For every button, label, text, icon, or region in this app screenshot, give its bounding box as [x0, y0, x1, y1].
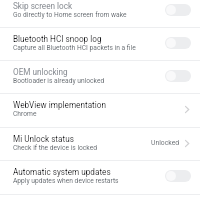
- staticText: Chrome: [13, 110, 37, 118]
- button[interactable]: Bluetooth HCI snoop log: [0, 28, 200, 60]
- button[interactable]: Skip screen lock: [0, 0, 200, 22]
- button[interactable]: Mi Unlock status: [0, 128, 200, 160]
- staticText: WebView implementation: [13, 100, 106, 110]
- staticText: Bootloader is already unlocked: [13, 77, 105, 85]
- button[interactable]: WebView implementation: [0, 94, 200, 127]
- button[interactable]: Toggle setting: [165, 37, 191, 49]
- button[interactable]: Toggle setting: [165, 170, 191, 182]
- button[interactable]: OEM unlocking: [0, 61, 200, 93]
- button[interactable]: Toggle setting: [165, 70, 191, 82]
- staticText: Mi Unlock status: [13, 134, 74, 144]
- staticText: Check if the device is locked: [13, 144, 97, 152]
- staticText: Skip screen lock: [13, 1, 73, 11]
- staticText: Bluetooth HCI snoop log: [13, 34, 102, 44]
- button[interactable]: Automatic system updates: [0, 161, 200, 194]
- button[interactable]: Open: [184, 137, 190, 149]
- button[interactable]: Open: [184, 103, 190, 115]
- staticText: OEM unlocking: [13, 67, 68, 77]
- staticText: Apply updates when device restarts: [13, 177, 119, 185]
- staticText: Capture all Bluetooth HCI packets in a f…: [13, 44, 136, 52]
- staticText: Go directly to Home screen from wake: [13, 11, 127, 19]
- button[interactable]: Toggle setting: [165, 4, 191, 16]
- staticText: Automatic system updates: [13, 167, 111, 177]
- staticText: Unlocked: [151, 139, 180, 147]
